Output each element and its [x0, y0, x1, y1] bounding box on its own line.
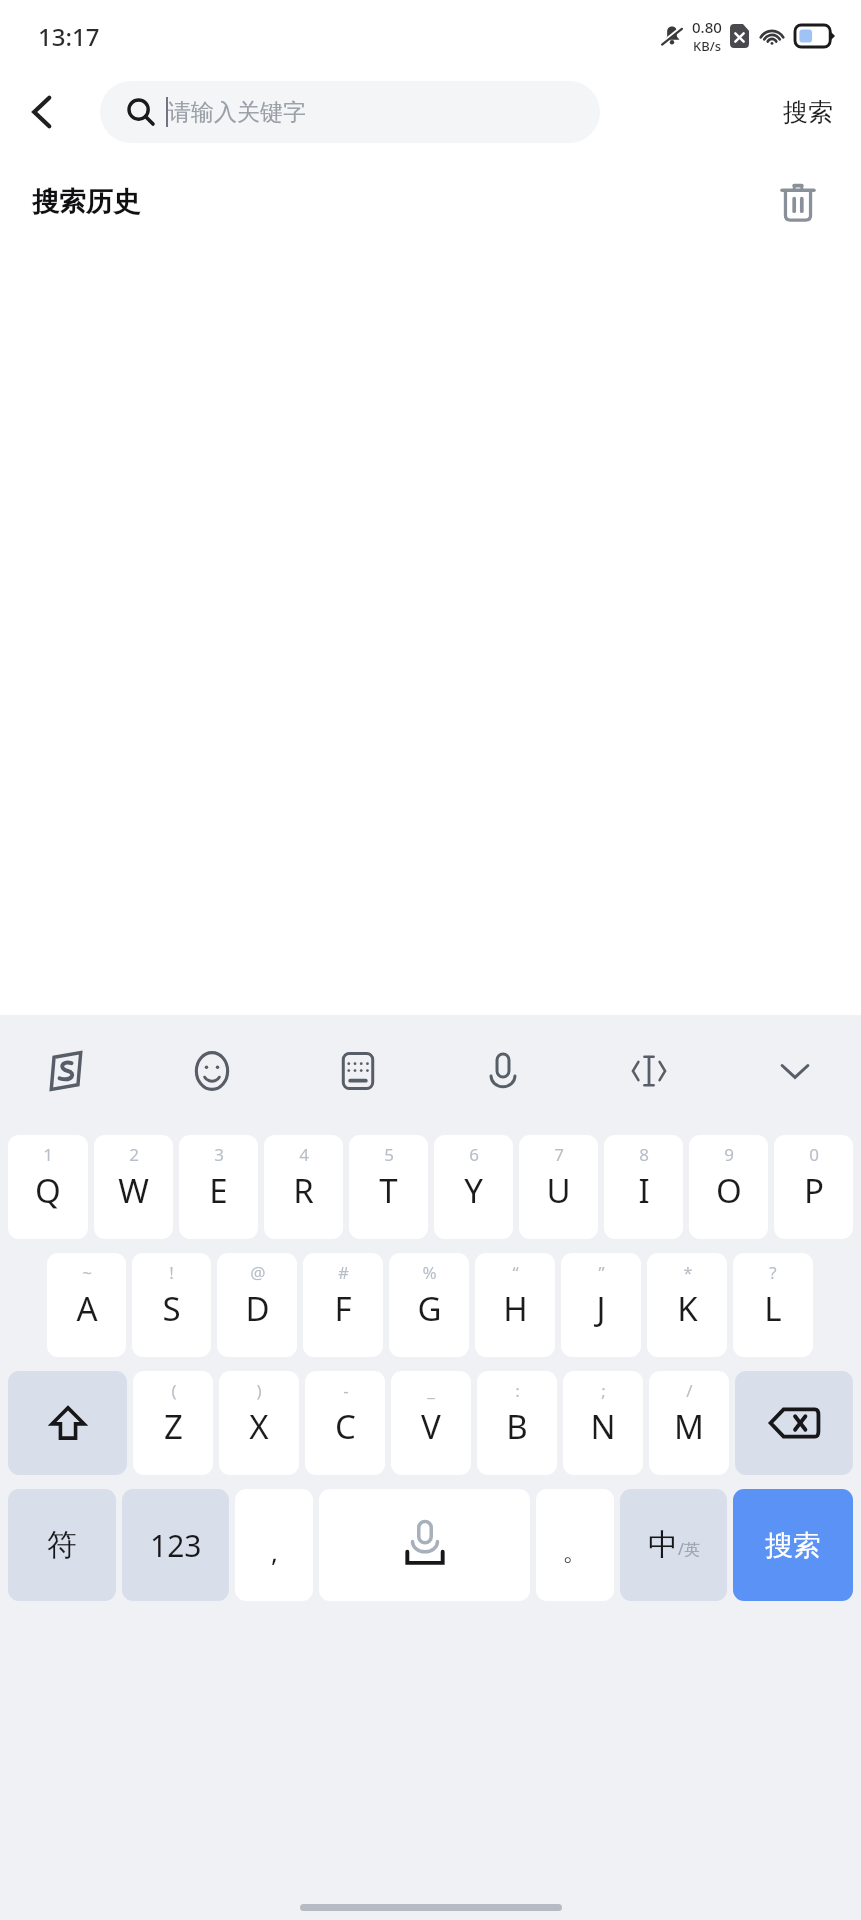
- button[interactable]: Sogou input method: [22, 1031, 110, 1111]
- button[interactable]: 搜索: [733, 1489, 853, 1601]
- staticText: V: [421, 1404, 441, 1449]
- button[interactable]: 3: [179, 1135, 258, 1239]
- button[interactable]: :: [477, 1371, 557, 1475]
- staticText: !: [169, 1261, 174, 1284]
- button[interactable]: 中: [620, 1489, 727, 1601]
- button[interactable]: 。: [536, 1489, 614, 1601]
- staticText: _: [427, 1379, 435, 1402]
- button[interactable]: -: [305, 1371, 385, 1475]
- staticText: O: [716, 1168, 742, 1213]
- staticText: 3: [214, 1143, 224, 1166]
- button[interactable]: “: [475, 1253, 555, 1357]
- staticText: ”: [598, 1261, 605, 1284]
- button[interactable]: 6: [434, 1135, 513, 1239]
- button[interactable]: Backspace: [735, 1371, 853, 1475]
- staticText: Q: [35, 1168, 61, 1213]
- button[interactable]: Space, voice input: [319, 1489, 530, 1601]
- button[interactable]: 请输入关键字: [100, 81, 600, 143]
- staticText: ,: [271, 1534, 278, 1569]
- button[interactable]: Back: [0, 72, 84, 152]
- staticText: 13:17: [38, 20, 100, 53]
- staticText: T: [379, 1168, 398, 1213]
- button[interactable]: /: [649, 1371, 729, 1475]
- staticText: 。: [562, 1535, 588, 1568]
- staticText: 8: [639, 1143, 649, 1166]
- button[interactable]: 9: [689, 1135, 768, 1239]
- staticText: B: [506, 1404, 528, 1449]
- staticText: 7: [554, 1143, 564, 1166]
- staticText: ): [256, 1379, 262, 1402]
- staticText: R: [293, 1168, 314, 1213]
- staticText: S: [162, 1286, 181, 1331]
- staticText: 符: [47, 1526, 77, 1564]
- button[interactable]: %: [389, 1253, 469, 1357]
- staticText: #: [338, 1261, 349, 1284]
- button[interactable]: #: [303, 1253, 383, 1357]
- staticText: 搜索: [783, 97, 833, 128]
- button[interactable]: 符: [8, 1489, 116, 1601]
- staticText: 123: [150, 1525, 202, 1566]
- staticText: P: [804, 1168, 824, 1213]
- staticText: “: [512, 1261, 519, 1284]
- staticText: 搜索: [765, 1528, 821, 1563]
- button[interactable]: ,: [235, 1489, 313, 1601]
- button[interactable]: 1: [8, 1135, 88, 1239]
- staticText: 9: [724, 1143, 734, 1166]
- staticText: H: [503, 1286, 528, 1331]
- staticText: 2: [129, 1143, 139, 1166]
- staticText: :: [515, 1379, 520, 1402]
- button[interactable]: Edit text cursor: [605, 1031, 693, 1111]
- staticText: E: [209, 1168, 228, 1213]
- staticText: ;: [601, 1379, 606, 1402]
- staticText: M: [674, 1404, 704, 1449]
- button[interactable]: 8: [604, 1135, 683, 1239]
- button[interactable]: Clear search history: [771, 175, 825, 229]
- button[interactable]: *: [647, 1253, 727, 1357]
- staticText: %: [422, 1261, 437, 1284]
- staticText: *: [683, 1261, 693, 1284]
- staticText: Y: [464, 1168, 483, 1213]
- button[interactable]: 123: [122, 1489, 229, 1601]
- button[interactable]: 7: [519, 1135, 598, 1239]
- staticText: @: [250, 1261, 266, 1284]
- button[interactable]: 0: [774, 1135, 853, 1239]
- staticText: 4: [299, 1143, 309, 1166]
- staticText: (: [171, 1379, 177, 1402]
- staticText: 0.80: [692, 17, 722, 37]
- staticText: KB/s: [693, 37, 722, 55]
- button[interactable]: (: [133, 1371, 213, 1475]
- staticText: L: [764, 1286, 782, 1331]
- button[interactable]: ?: [733, 1253, 813, 1357]
- button[interactable]: ;: [563, 1371, 643, 1475]
- staticText: X: [249, 1404, 269, 1449]
- button[interactable]: ): [219, 1371, 299, 1475]
- button[interactable]: ~: [47, 1253, 126, 1357]
- staticText: 搜索历史: [32, 185, 140, 219]
- button[interactable]: Keyboard layout: [314, 1031, 402, 1111]
- staticText: W: [118, 1168, 149, 1213]
- button[interactable]: _: [391, 1371, 471, 1475]
- staticText: ?: [769, 1261, 777, 1284]
- button[interactable]: 5: [349, 1135, 428, 1239]
- button[interactable]: Emoji: [168, 1031, 256, 1111]
- button[interactable]: Hide keyboard: [751, 1031, 839, 1111]
- staticText: C: [335, 1404, 356, 1449]
- button[interactable]: @: [217, 1253, 297, 1357]
- staticText: A: [76, 1286, 98, 1331]
- staticText: /: [686, 1379, 693, 1402]
- staticText: I: [638, 1168, 650, 1213]
- button[interactable]: !: [132, 1253, 211, 1357]
- staticText: F: [334, 1286, 352, 1331]
- button[interactable]: Shift: [8, 1371, 127, 1475]
- staticText: J: [596, 1286, 606, 1331]
- staticText: N: [590, 1404, 616, 1449]
- staticText: ~: [82, 1261, 92, 1284]
- button[interactable]: 2: [94, 1135, 173, 1239]
- button[interactable]: 搜索: [755, 72, 861, 152]
- button[interactable]: 4: [264, 1135, 343, 1239]
- staticText: 0: [809, 1143, 819, 1166]
- staticText: K: [677, 1286, 698, 1331]
- button[interactable]: Voice input: [459, 1031, 547, 1111]
- button[interactable]: ”: [561, 1253, 641, 1357]
- staticText: -: [343, 1379, 349, 1402]
